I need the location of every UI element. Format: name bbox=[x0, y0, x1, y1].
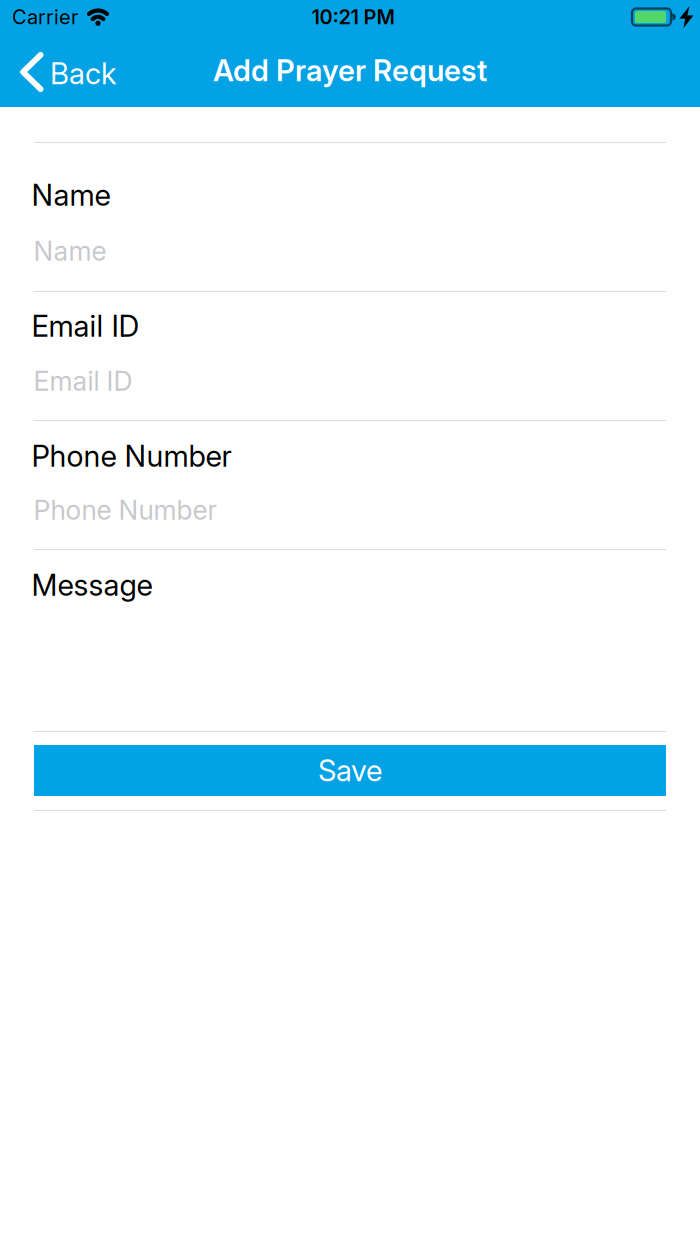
staticText: Back bbox=[50, 56, 117, 91]
staticText: Phone Number bbox=[33, 494, 217, 526]
button[interactable]: Save bbox=[34, 745, 666, 796]
staticText: Message bbox=[31, 568, 152, 602]
staticText: Phone Number bbox=[31, 439, 231, 473]
staticText: Add Prayer Request bbox=[213, 53, 487, 88]
staticText: Name bbox=[31, 178, 110, 212]
staticText: Save bbox=[318, 753, 382, 788]
staticText: Carrier bbox=[12, 5, 78, 29]
button[interactable]: Name bbox=[0, 234, 700, 268]
button[interactable]: Back bbox=[0, 50, 117, 90]
staticText: Email ID bbox=[31, 309, 139, 343]
staticText: Name bbox=[33, 235, 106, 267]
staticText: Email ID bbox=[33, 365, 132, 397]
button[interactable]: Phone Number bbox=[0, 493, 700, 527]
staticText: 10:21 PM bbox=[311, 5, 394, 29]
button[interactable]: Email ID bbox=[0, 364, 700, 398]
